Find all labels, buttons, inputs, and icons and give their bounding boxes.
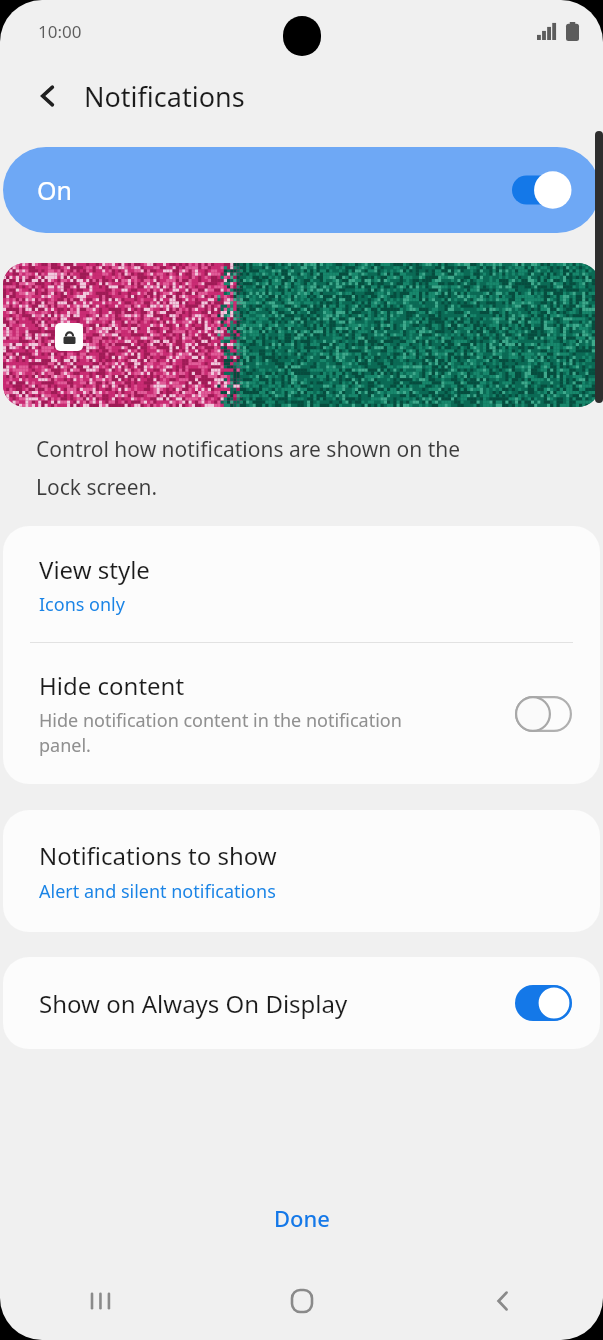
staticText: Alert and silent notifications xyxy=(39,879,276,904)
button[interactable]: Back xyxy=(402,1262,603,1340)
button[interactable]: Show on Always On Display xyxy=(3,957,600,1049)
button[interactable]: Home xyxy=(201,1262,402,1340)
staticText: Lock screen. xyxy=(36,473,158,502)
button[interactable]: Done xyxy=(234,1189,370,1247)
staticText: panel. xyxy=(39,733,91,758)
staticText: View style xyxy=(39,553,150,586)
button[interactable]: On xyxy=(3,147,600,233)
staticText: Show on Always On Display xyxy=(39,987,515,1020)
staticText: 10:00 xyxy=(38,20,82,43)
button[interactable]: Notifications to show xyxy=(3,810,600,932)
staticText: Hide content xyxy=(39,669,185,702)
staticText: Control how notifications are shown on t… xyxy=(36,435,461,464)
button[interactable]: View style xyxy=(3,526,600,642)
staticText: On xyxy=(37,173,72,207)
staticText: Done xyxy=(274,1203,330,1233)
staticText: Hide notification content in the notific… xyxy=(39,708,402,733)
button[interactable]: Recent apps xyxy=(0,1262,201,1340)
button[interactable]: Hide content xyxy=(3,643,600,784)
staticText: Notifications xyxy=(84,78,245,115)
button[interactable]: Back xyxy=(22,70,74,122)
staticText: Notifications to show xyxy=(39,839,277,872)
staticText: Icons only xyxy=(39,592,125,617)
button[interactable] xyxy=(3,263,600,407)
